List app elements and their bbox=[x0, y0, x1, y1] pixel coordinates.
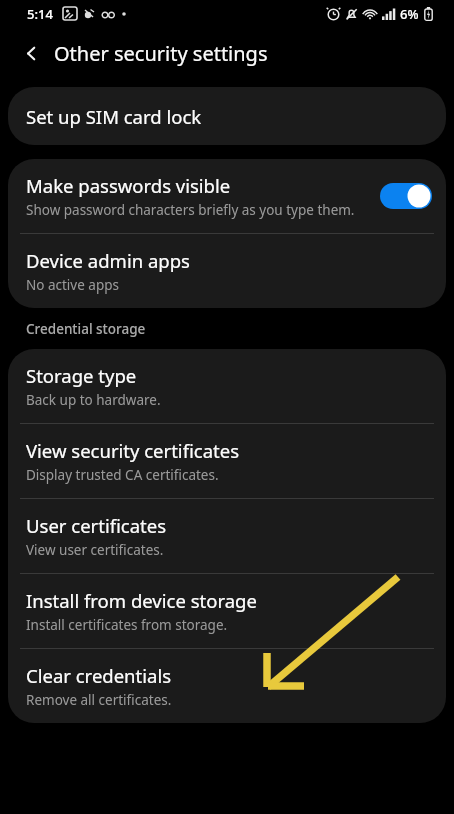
staticText: 5:14 bbox=[27, 5, 53, 23]
staticText: View user certificates. bbox=[26, 541, 164, 559]
staticText: User certificates bbox=[26, 513, 167, 538]
staticText: Install from device storage bbox=[26, 588, 257, 613]
staticText: Display trusted CA certificates. bbox=[26, 466, 219, 484]
button[interactable]: Storage type bbox=[8, 349, 446, 423]
staticText: Credential storage bbox=[26, 320, 146, 338]
button[interactable]: Device admin apps bbox=[8, 234, 446, 308]
button[interactable]: Clear credentials bbox=[8, 649, 446, 723]
staticText: No active apps bbox=[26, 276, 119, 294]
button[interactable]: User certificates bbox=[8, 499, 446, 573]
staticText: 6% bbox=[400, 5, 419, 23]
button[interactable]: View security certificates bbox=[8, 424, 446, 498]
staticText: Show password characters briefly as you … bbox=[26, 201, 355, 219]
button[interactable]: Make passwords visible bbox=[8, 159, 446, 233]
staticText: Device admin apps bbox=[26, 248, 190, 273]
staticText: Remove all certificates. bbox=[26, 691, 172, 709]
button[interactable]: Back bbox=[14, 36, 48, 70]
staticText: Clear credentials bbox=[26, 663, 172, 688]
staticText: View security certificates bbox=[26, 438, 240, 463]
staticText: Make passwords visible bbox=[26, 173, 231, 198]
button[interactable]: Set up SIM card lock bbox=[8, 87, 446, 145]
staticText: Back up to hardware. bbox=[26, 391, 161, 409]
button[interactable]: Make passwords visible toggle bbox=[380, 183, 432, 209]
button[interactable]: Install from device storage bbox=[8, 574, 446, 648]
staticText: Set up SIM card lock bbox=[26, 104, 202, 129]
staticText: Other security settings bbox=[54, 40, 268, 67]
staticText: Storage type bbox=[26, 363, 137, 388]
staticText: Install certificates from storage. bbox=[26, 616, 228, 634]
